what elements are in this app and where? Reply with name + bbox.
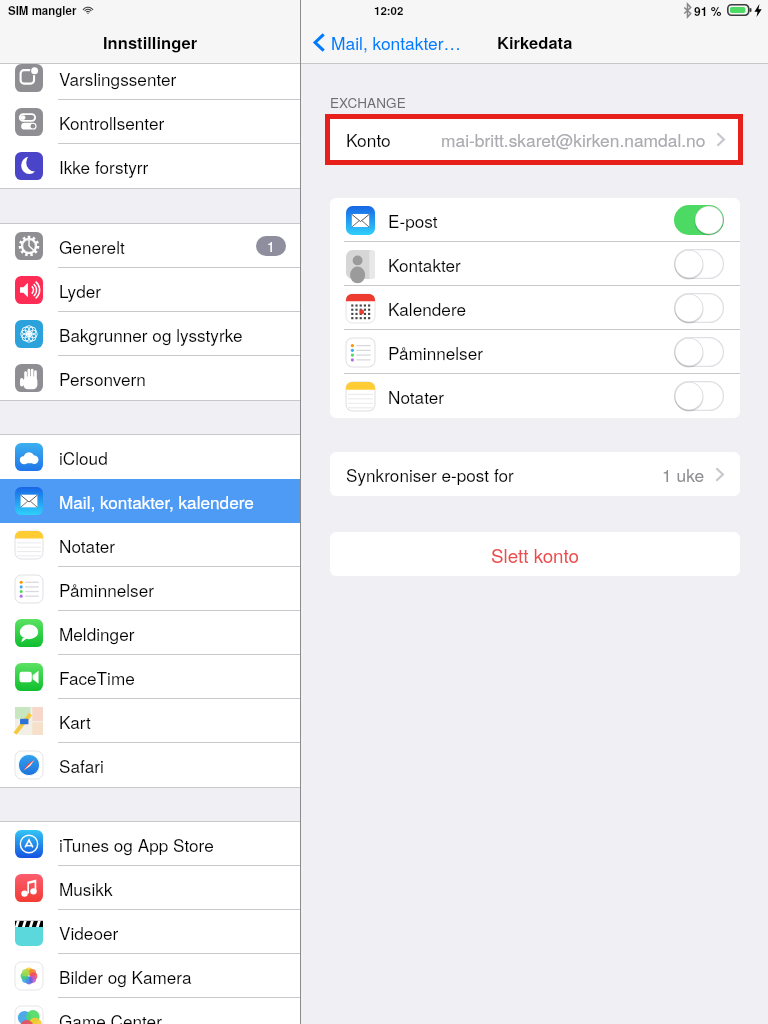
staticText: Mail, kontakter…: [331, 30, 461, 55]
button[interactable]: Kontrollsenter: [0, 100, 300, 144]
staticText: Game Center: [59, 1008, 286, 1024]
button[interactable]: Personvern: [0, 356, 300, 400]
staticText: EXCHANGE: [330, 93, 406, 112]
button[interactable]: Kalendere: [330, 286, 740, 330]
staticText: Videoer: [59, 920, 286, 945]
button[interactable]: Bakgrunner og lysstyrke: [0, 312, 300, 356]
staticText: Ikke forstyrr: [59, 154, 286, 179]
button[interactable]: Safari: [0, 743, 300, 787]
staticText: Slett konto: [491, 541, 580, 568]
staticText: Mail, kontakter, kalendere: [59, 489, 286, 514]
staticText: Musikk: [59, 876, 286, 901]
button[interactable]: Kart: [0, 699, 300, 743]
button[interactable]: Påminnelser: [330, 330, 740, 374]
staticText: Kontrollsenter: [59, 110, 286, 135]
staticText: Påminnelser: [59, 577, 286, 602]
button[interactable]: Påminnelser: [0, 567, 300, 611]
staticText: 1 uke: [662, 462, 705, 487]
staticText: 1: [267, 236, 275, 256]
button[interactable]: Notater: [330, 374, 740, 418]
button[interactable]: Generelt: [0, 224, 300, 268]
button[interactable]: iCloud: [0, 435, 300, 479]
staticText: Påminnelser: [388, 340, 674, 365]
button[interactable]: Varslingssenter: [0, 56, 300, 100]
button[interactable]: Bilder og Kamera: [0, 954, 300, 998]
button[interactable]: Slett konto: [330, 532, 740, 576]
button[interactable]: iTunes og App Store: [0, 822, 300, 866]
staticText: Kirkedata: [497, 30, 573, 54]
button[interactable]: Ikke forstyrr: [0, 144, 300, 188]
staticText: Lyder: [59, 278, 286, 303]
button[interactable]: Videoer: [0, 910, 300, 954]
button[interactable]: Mail, kontakter, kalendere: [0, 479, 300, 523]
staticText: Bakgrunner og lysstyrke: [59, 322, 286, 347]
staticText: Kalendere: [388, 296, 674, 321]
staticText: Meldinger: [59, 621, 286, 646]
button[interactable]: Musikk: [0, 866, 300, 910]
button[interactable]: Meldinger: [0, 611, 300, 655]
staticText: Safari: [59, 753, 286, 778]
button[interactable]: Game Center: [0, 998, 300, 1024]
staticText: Konto: [346, 127, 391, 152]
staticText: iCloud: [59, 445, 286, 470]
staticText: iTunes og App Store: [59, 832, 286, 857]
staticText: SIM mangler: [8, 2, 77, 18]
staticText: 91 %: [694, 2, 722, 19]
staticText: FaceTime: [59, 665, 286, 690]
staticText: Kontakter: [388, 252, 674, 277]
staticText: Varslingssenter: [59, 66, 286, 91]
staticText: Notater: [388, 384, 674, 409]
button[interactable]: Lyder: [0, 268, 300, 312]
button[interactable]: FaceTime: [0, 655, 300, 699]
staticText: Synkroniser e-post for: [346, 462, 514, 487]
button[interactable]: Kontakter: [330, 242, 740, 286]
button[interactable]: Konto: [330, 119, 738, 160]
staticText: Kart: [59, 709, 286, 734]
staticText: Notater: [59, 533, 286, 558]
staticText: Personvern: [59, 366, 286, 391]
button[interactable]: Synkroniser e-post for: [330, 452, 740, 496]
staticText: Bilder og Kamera: [59, 964, 286, 989]
staticText: Innstillinger: [103, 30, 198, 54]
staticText: 12:02: [374, 2, 404, 18]
staticText: mai-britt.skaret@kirken.namdal.no: [441, 127, 706, 152]
staticText: Generelt: [59, 234, 256, 259]
button[interactable]: Mail, kontakter…: [312, 26, 463, 59]
staticText: E-post: [388, 208, 674, 233]
button[interactable]: Notater: [0, 523, 300, 567]
button[interactable]: E-post: [330, 198, 740, 242]
